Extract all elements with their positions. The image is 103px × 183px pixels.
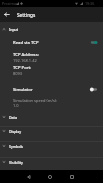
- staticText: Visibility: [9, 160, 23, 165]
- button[interactable]: Back: [19, 170, 39, 183]
- staticText: Simulator: [13, 87, 33, 93]
- staticText: Simulation speed (m/s):: [13, 98, 58, 103]
- staticText: 8093: [13, 71, 23, 76]
- staticText: Symbols: [9, 144, 24, 149]
- staticText: TCP Port:: [13, 65, 32, 71]
- button[interactable]: Input: [0, 21, 103, 36]
- staticText: Input: [9, 27, 19, 32]
- staticText: Settings: [17, 12, 36, 18]
- staticText: TCP Address:: [13, 52, 39, 58]
- staticText: 1.0: [13, 103, 19, 108]
- button[interactable]: Data: [0, 109, 103, 124]
- staticText: 19:36: [85, 1, 95, 6]
- button[interactable]: Display: [0, 123, 103, 138]
- staticText: 192.168.1.42: [13, 58, 37, 63]
- button[interactable]: Visibility: [0, 154, 103, 169]
- button[interactable]: Home: [40, 170, 60, 183]
- button[interactable]: Simulator: [0, 83, 103, 96]
- button[interactable]: Symbols: [0, 138, 103, 153]
- staticText: Read via TCP: [13, 40, 39, 46]
- staticText: Data: [9, 115, 17, 120]
- staticText: Display: [9, 129, 22, 134]
- button[interactable]: Navigate up: [0, 7, 13, 22]
- button[interactable]: Read via TCP: [0, 36, 103, 49]
- button[interactable]: Recent apps: [62, 170, 82, 183]
- staticText: Proximus: [2, 1, 18, 6]
